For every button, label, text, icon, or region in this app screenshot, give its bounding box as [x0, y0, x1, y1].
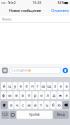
staticText: в — [15, 92, 17, 98]
button[interactable]: щ — [47, 82, 52, 90]
staticText: а — [21, 92, 23, 98]
staticText: 16:20 — [32, 1, 41, 5]
staticText: э — [65, 92, 67, 98]
button[interactable]: х — [58, 82, 63, 90]
button[interactable]: и — [32, 101, 38, 109]
staticText: ы — [8, 92, 11, 98]
button[interactable]: ы — [7, 91, 13, 99]
button[interactable]: Пробел — [17, 111, 53, 119]
button[interactable]: 123 — [1, 111, 9, 119]
button[interactable]: м — [26, 101, 32, 109]
button[interactable]: е — [24, 82, 29, 90]
staticText: ч — [16, 102, 18, 108]
staticText: к — [20, 83, 22, 89]
button[interactable]: ч — [14, 101, 20, 109]
button[interactable]: п — [26, 91, 32, 99]
staticText: п — [28, 92, 30, 98]
button[interactable]: Backspace — [62, 101, 69, 109]
staticText: е — [25, 83, 27, 89]
staticText: Новое сообщение — [9, 8, 41, 13]
staticText: Кому: — [2, 16, 12, 21]
staticText: н — [31, 83, 33, 89]
staticText: з — [54, 83, 56, 89]
staticText: б — [52, 102, 54, 108]
staticText: Сообщение — [11, 69, 27, 72]
button[interactable]: ц — [7, 82, 12, 90]
staticText: ю — [57, 102, 60, 108]
button[interactable]: Отменить — [50, 6, 70, 15]
button[interactable]: ш — [41, 82, 46, 90]
button[interactable]: Ввод — [53, 111, 69, 119]
staticText: с — [22, 102, 24, 108]
button[interactable]: ф — [1, 91, 6, 99]
staticText: ф — [2, 92, 5, 98]
staticText: ъ — [65, 83, 67, 89]
button[interactable]: ъ — [64, 82, 69, 90]
button[interactable]: т — [38, 101, 44, 109]
staticText: л — [47, 92, 49, 98]
button[interactable]: Switch keyboard — [9, 111, 16, 119]
button[interactable]: к — [18, 82, 23, 90]
button[interactable]: д — [51, 91, 57, 99]
button[interactable]: й — [1, 82, 6, 90]
staticText: д — [53, 92, 55, 98]
button[interactable]: ю — [56, 101, 62, 109]
button[interactable]: р — [32, 91, 38, 99]
button[interactable]: Shift — [1, 101, 8, 109]
staticText: Отменить — [51, 8, 69, 13]
staticText: й — [3, 83, 5, 89]
button[interactable]: а — [20, 91, 25, 99]
button[interactable]: б — [50, 101, 56, 109]
staticText: ж — [59, 92, 62, 98]
button[interactable]: Apps — [2, 68, 8, 73]
staticText: у — [14, 83, 16, 89]
staticText: г — [37, 83, 39, 89]
button[interactable]: я — [8, 101, 14, 109]
staticText: о — [40, 92, 42, 98]
button[interactable]: Send — [63, 68, 68, 73]
staticText: м — [27, 102, 30, 108]
button[interactable]: э — [64, 91, 69, 99]
staticText: т — [40, 102, 42, 108]
staticText: щ — [47, 83, 51, 89]
staticText: Ввод — [57, 113, 65, 116]
staticText: ц — [8, 83, 10, 89]
staticText: Tele2 — [8, 1, 16, 5]
staticText: ш — [41, 83, 45, 89]
button[interactable]: л — [45, 91, 50, 99]
button[interactable]: в — [13, 91, 19, 99]
staticText: 123 — [2, 113, 8, 116]
staticText: 84% — [58, 1, 64, 5]
button[interactable]: з — [52, 82, 57, 90]
button[interactable]: г — [35, 82, 40, 90]
button[interactable]: ж — [57, 91, 63, 99]
button[interactable]: о — [38, 91, 44, 99]
button[interactable]: н — [30, 82, 35, 90]
staticText: я — [10, 102, 12, 108]
staticText: р — [34, 92, 36, 98]
button[interactable]: с — [20, 101, 26, 109]
button[interactable]: ь — [44, 101, 50, 109]
button[interactable]: у — [12, 82, 18, 90]
staticText: ь — [46, 102, 48, 108]
staticText: Пробел — [29, 113, 40, 116]
staticText: и — [34, 102, 36, 108]
staticText: х — [60, 83, 62, 89]
